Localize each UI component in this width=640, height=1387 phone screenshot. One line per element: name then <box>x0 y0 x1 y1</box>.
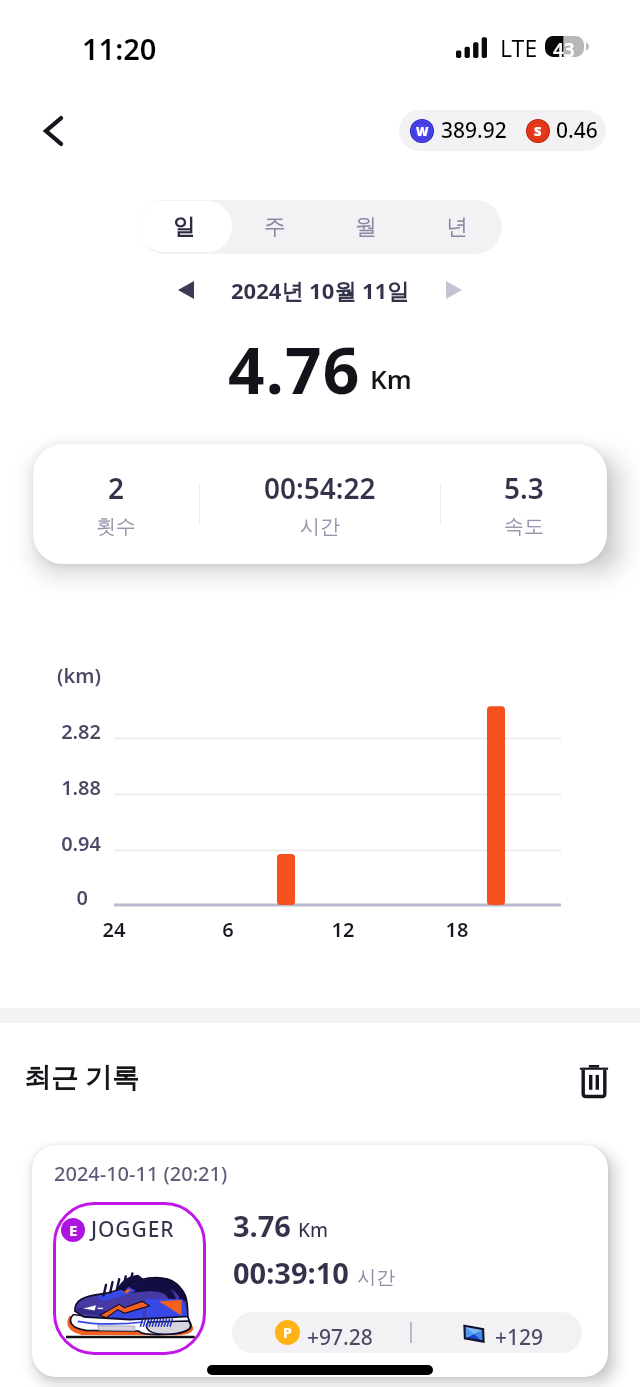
staticText: 3.76 <box>233 1206 291 1245</box>
staticText: 월 <box>355 213 377 241</box>
staticText: JOGGER <box>91 1215 175 1244</box>
button[interactable]: 2024-10-11 (20:21) <box>32 1145 608 1377</box>
button[interactable]: 2 <box>33 469 199 539</box>
button[interactable]: Previous day <box>168 272 204 308</box>
staticText: E <box>69 1220 78 1240</box>
staticText: 최근 기록 <box>24 1058 140 1095</box>
staticText: 12 <box>303 916 383 943</box>
staticText: 시간 <box>357 1266 395 1290</box>
button[interactable]: 주 <box>229 200 320 254</box>
staticText: 일 <box>173 213 195 241</box>
staticText: 4.76 <box>228 326 361 402</box>
staticText: S <box>534 122 542 140</box>
staticText: 11:20 <box>82 29 157 68</box>
staticText: 0.94 <box>0 830 101 857</box>
staticText: 18 <box>417 916 497 943</box>
button[interactable]: Delete records <box>570 1056 618 1104</box>
staticText: 년 <box>446 213 468 241</box>
staticText: P <box>283 1323 292 1342</box>
staticText: 횟수 <box>96 514 136 539</box>
staticText: (km) <box>0 662 101 689</box>
staticText: 24 <box>74 916 154 943</box>
staticText: 43 <box>553 37 575 58</box>
staticText: 00:54:22 <box>264 469 376 507</box>
staticText: Km <box>298 1217 329 1243</box>
staticText: 00:39:10 <box>233 1253 349 1292</box>
staticText: 2024년 10월 11일 <box>231 275 410 305</box>
staticText: 1.88 <box>0 774 101 801</box>
staticText: 시간 <box>300 514 340 539</box>
staticText: +129 <box>495 1323 544 1352</box>
staticText: 2.82 <box>0 718 101 745</box>
staticText: 2 <box>108 469 125 507</box>
staticText: +97.28 <box>307 1323 373 1352</box>
button[interactable]: W <box>399 110 606 151</box>
button[interactable]: 년 <box>411 200 502 254</box>
button[interactable]: 00:54:22 <box>200 469 440 539</box>
staticText: 2024-10-11 (20:21) <box>54 1160 228 1187</box>
button[interactable]: Back <box>27 105 79 157</box>
staticText: 속도 <box>504 514 544 539</box>
staticText: 0.46 <box>556 116 598 145</box>
staticText: 주 <box>264 213 286 241</box>
button[interactable]: 일 <box>138 200 229 254</box>
staticText: 6 <box>188 916 268 943</box>
button[interactable]: Next day <box>436 272 472 308</box>
button[interactable]: 5.3 <box>441 469 607 539</box>
staticText: 0 <box>0 884 88 911</box>
staticText: W <box>416 123 429 139</box>
staticText: LTE <box>500 32 538 63</box>
staticText: Km <box>370 361 412 396</box>
staticText: 389.92 <box>441 116 507 145</box>
button[interactable]: P <box>232 1312 582 1353</box>
staticText: 5.3 <box>504 469 544 507</box>
button[interactable]: 월 <box>320 200 411 254</box>
